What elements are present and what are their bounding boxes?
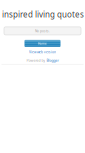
staticText: inspired living quotes [2,9,84,20]
button[interactable]: Blogger [47,58,59,63]
staticText: Blogger [47,58,59,63]
staticText: Powered by [26,58,45,63]
staticText: Home [38,41,47,46]
staticText: View web version [29,50,56,54]
button[interactable]: Home [24,40,60,47]
staticText: No posts. [35,29,50,33]
button[interactable]: View web version [29,50,56,54]
